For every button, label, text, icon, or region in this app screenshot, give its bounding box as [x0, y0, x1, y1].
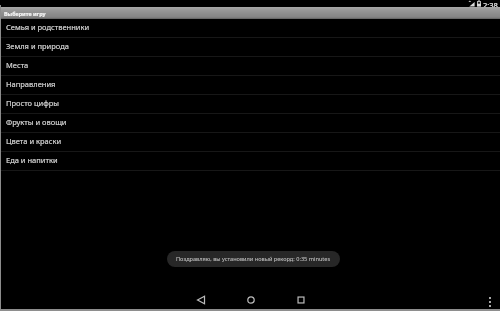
staticText: Поздравляю, вы установили новый рекорд: …: [176, 255, 331, 263]
staticText: Семья и родственники: [6, 22, 90, 32]
button[interactable]: More options: [483, 295, 497, 309]
staticText: Еда и напитки: [6, 155, 58, 165]
button[interactable]: Семья и родственники: [0, 19, 500, 38]
staticText: Фрукты и овощи: [6, 117, 67, 127]
button[interactable]: Фрукты и овощи: [0, 114, 500, 133]
staticText: 2:38: [483, 0, 498, 7]
staticText: Места: [6, 60, 29, 70]
button[interactable]: Еда и напитки: [0, 152, 500, 171]
button[interactable]: Home: [236, 289, 265, 311]
button[interactable]: Цвета и краски: [0, 133, 500, 152]
staticText: Направления: [6, 79, 56, 89]
staticText: Земля и природа: [6, 41, 69, 51]
button[interactable]: Места: [0, 57, 500, 76]
button[interactable]: Просто цифры: [0, 95, 500, 114]
button[interactable]: Back: [186, 289, 215, 311]
staticText: Цвета и краски: [6, 136, 62, 146]
staticText: Просто цифры: [6, 98, 60, 108]
button[interactable]: Земля и природа: [0, 38, 500, 57]
button[interactable]: Recent apps: [286, 289, 315, 311]
staticText: Выберите игру: [4, 10, 46, 17]
button[interactable]: Направления: [0, 76, 500, 95]
